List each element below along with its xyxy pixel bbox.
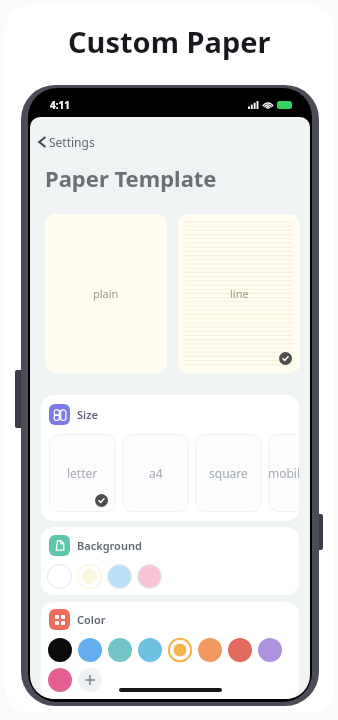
button[interactable] bbox=[138, 638, 162, 662]
staticText: mobile bbox=[268, 465, 299, 481]
button[interactable] bbox=[48, 668, 72, 692]
staticText: Paper Template bbox=[45, 163, 217, 193]
staticText: Color bbox=[77, 612, 106, 627]
button[interactable] bbox=[48, 638, 72, 662]
staticText: line bbox=[230, 286, 249, 301]
staticText: letter bbox=[67, 465, 98, 481]
button[interactable] bbox=[198, 638, 222, 662]
button[interactable]: letter bbox=[49, 434, 116, 512]
staticText: square bbox=[209, 465, 248, 481]
button[interactable] bbox=[137, 564, 162, 589]
button[interactable]: mobile bbox=[268, 434, 299, 512]
staticText: Size bbox=[77, 407, 98, 422]
staticText: 4:11 bbox=[50, 98, 70, 112]
button[interactable]: a4 bbox=[122, 434, 189, 512]
button[interactable] bbox=[77, 564, 102, 589]
button[interactable] bbox=[168, 638, 192, 662]
staticText: Background bbox=[77, 538, 142, 553]
staticText: a4 bbox=[149, 465, 163, 481]
button[interactable] bbox=[228, 638, 252, 662]
button[interactable] bbox=[78, 638, 102, 662]
staticText: plain bbox=[93, 286, 119, 301]
button[interactable]: square bbox=[195, 434, 262, 512]
button[interactable] bbox=[108, 638, 132, 662]
staticText: Settings bbox=[49, 134, 95, 150]
button[interactable] bbox=[47, 564, 72, 589]
button[interactable] bbox=[107, 564, 132, 589]
button[interactable]: Settings bbox=[36, 131, 97, 153]
staticText: Custom Paper bbox=[68, 22, 271, 61]
button[interactable]: Add color bbox=[78, 668, 102, 692]
button[interactable] bbox=[258, 638, 282, 662]
button[interactable]: line bbox=[178, 214, 300, 373]
button[interactable]: plain bbox=[45, 214, 167, 373]
